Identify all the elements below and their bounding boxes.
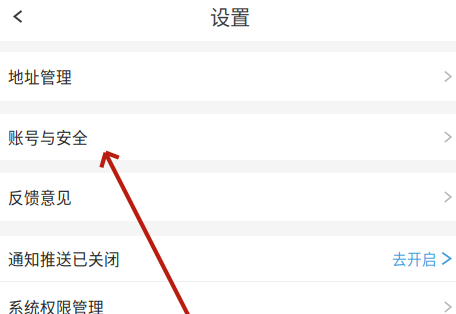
button[interactable]: 反馈意见 bbox=[0, 173, 456, 221]
button[interactable]: 系统权限管理 bbox=[0, 282, 456, 314]
button[interactable]: Back bbox=[0, 0, 36, 33]
staticText: 地址管理 bbox=[8, 65, 72, 88]
staticText: 反馈意见 bbox=[8, 186, 72, 208]
staticText: 账号与安全 bbox=[8, 126, 88, 148]
staticText: 去开启 bbox=[392, 248, 437, 269]
button[interactable]: 账号与安全 bbox=[0, 114, 456, 160]
staticText: 系统权限管理 bbox=[8, 296, 104, 314]
staticText: 通知推送已关闭 bbox=[8, 247, 120, 270]
button[interactable]: 地址管理 bbox=[0, 52, 456, 101]
button[interactable]: 去开启 bbox=[392, 248, 451, 269]
staticText: 设置 bbox=[210, 2, 250, 31]
button[interactable]: 通知推送已关闭 bbox=[0, 236, 456, 281]
